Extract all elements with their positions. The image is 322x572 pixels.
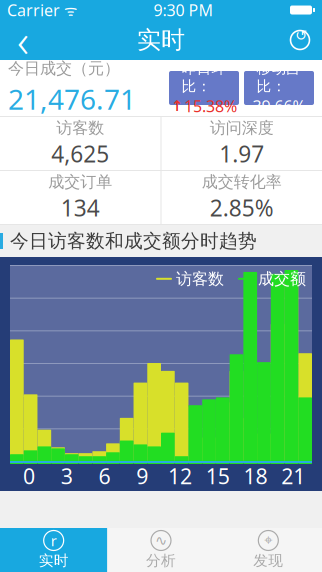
button[interactable]: ∿ [107,528,215,572]
button[interactable]: ⌖ [215,528,322,572]
staticText: 访客数 [56,118,104,138]
staticText: ᯤ [60,0,77,20]
staticText: 3 [61,462,73,490]
staticText: 移动占比： [256,59,301,95]
staticText: 今日成交（元） [8,59,120,78]
staticText: ↺ [295,27,307,44]
staticText: 15 [206,462,230,490]
staticText: 39.66% [252,95,305,117]
staticText: 成交转化率 [202,172,282,192]
staticText: 成交订单 [48,172,112,192]
staticText: 6 [98,462,110,490]
staticText: 访问深度 [210,118,274,138]
staticText: 今日访客数和成交额分时趋势 [10,229,257,252]
staticText: ‹ [17,10,29,70]
staticText: ↑ [171,98,183,114]
staticText: 实时 [137,25,185,55]
button[interactable]: Back [0,20,46,60]
button[interactable]: r [0,528,107,572]
staticText: r [51,531,57,550]
staticText: ∿ [155,532,167,549]
staticText: 12 [168,462,192,490]
staticText: 昨日环比： [181,59,226,95]
staticText: ⌖ [264,533,272,548]
button[interactable]: Refresh [278,20,322,60]
staticText: Carrier [7,0,60,21]
staticText: 发现 [253,551,283,569]
staticText: 9:30 PM [153,0,213,21]
staticText: 分析 [146,551,176,569]
staticText: 18 [243,462,267,490]
staticText: 9 [136,462,148,490]
staticText: 21,476.71 [8,80,136,117]
staticText: 2.85% [210,193,274,223]
staticText: 1.97 [219,139,264,169]
staticText: 21 [281,462,305,490]
staticText: 成交额 [258,269,306,289]
staticText: 访客数 [176,269,224,289]
staticText: 15.38% [184,95,237,117]
staticText: 4,625 [51,139,109,169]
staticText: 实时 [39,551,69,569]
staticText: 134 [61,193,100,223]
staticText: 0 [23,462,35,490]
